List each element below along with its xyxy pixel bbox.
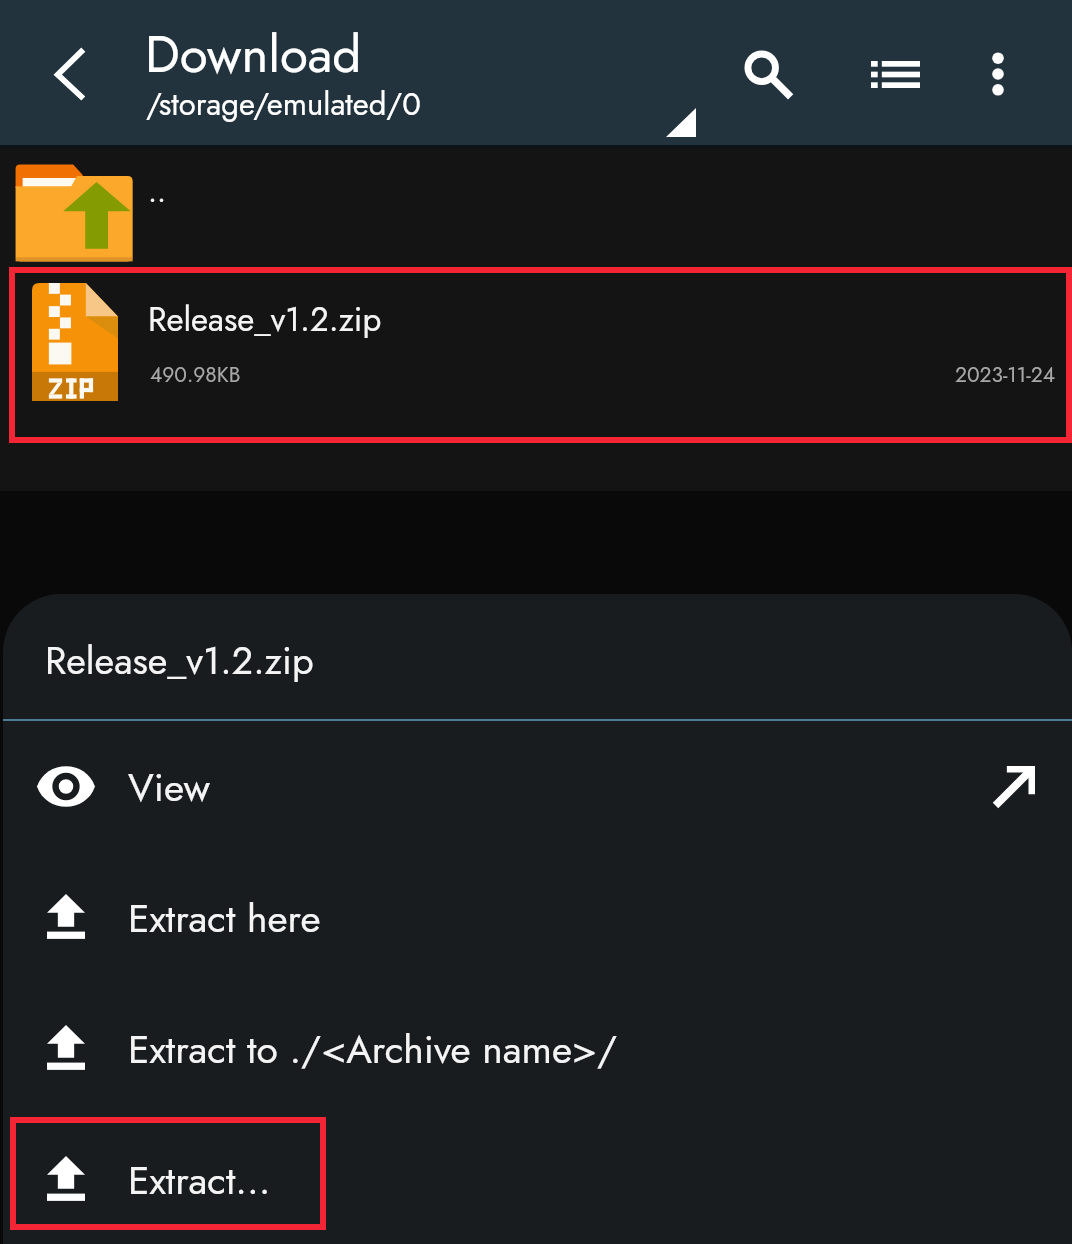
button[interactable]: .. [0, 148, 1072, 267]
button[interactable]: Change view [855, 41, 935, 107]
staticText: 2023-11-24 [955, 360, 1055, 390]
button[interactable]: More options [958, 34, 1038, 114]
button[interactable]: Extract... [3, 1114, 1072, 1244]
button[interactable]: Release_v1.2.zip [0, 267, 1072, 443]
staticText: Extract here [128, 890, 321, 946]
staticText: Download [145, 17, 362, 91]
staticText: Release_v1.2.zip [148, 296, 382, 344]
button[interactable]: Open externally [978, 766, 1050, 808]
staticText: 490.98KB [150, 360, 241, 390]
staticText: View [128, 759, 210, 815]
button[interactable]: Back [28, 32, 112, 116]
button[interactable]: Extract here [3, 852, 1072, 983]
button[interactable]: Search [722, 28, 802, 108]
staticText: .. [148, 170, 166, 213]
button[interactable]: Extract to ./<Archive name>/ [3, 983, 1072, 1114]
staticText: Extract to ./<Archive name>/ [128, 1021, 618, 1077]
staticText: Extract... [128, 1152, 271, 1208]
button[interactable]: View [3, 721, 1072, 852]
staticText: /storage/emulated/0 [146, 82, 421, 127]
staticText: Release_v1.2.zip [45, 633, 314, 688]
